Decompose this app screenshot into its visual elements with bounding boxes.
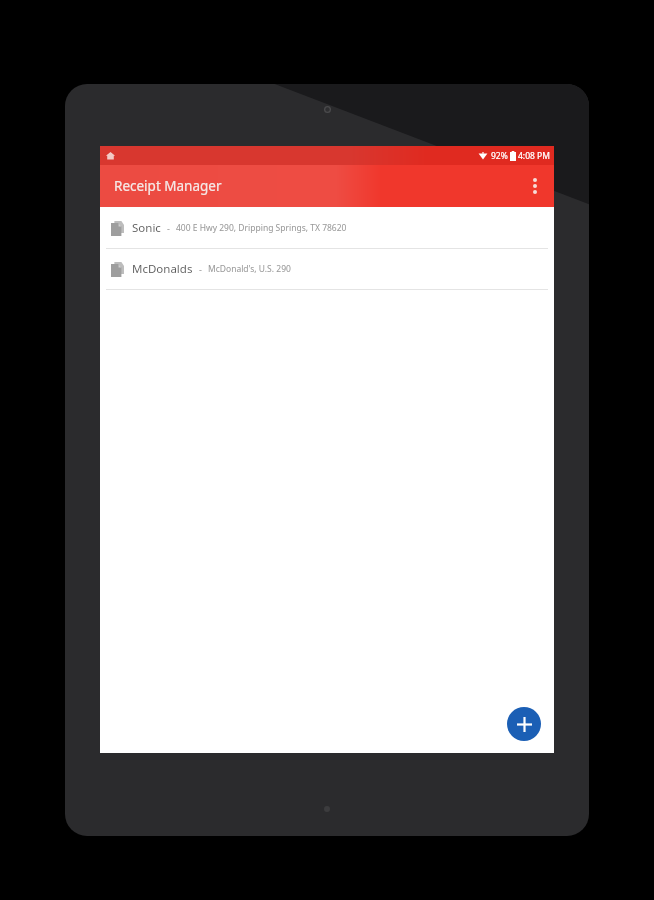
staticText: Receipt Manager — [114, 177, 222, 195]
button[interactable]: Sonic — [100, 208, 554, 248]
staticText: McDonald's, U.S. 290 — [208, 263, 291, 275]
staticText: McDonalds — [132, 261, 193, 277]
staticText: 400 E Hwy 290, Dripping Springs, TX 7862… — [176, 222, 347, 234]
button[interactable]: Add receipt — [507, 707, 541, 741]
button[interactable]: McDonalds — [100, 249, 554, 289]
button[interactable]: More options — [516, 167, 554, 205]
staticText: - — [199, 263, 202, 275]
staticText: - — [167, 222, 170, 234]
staticText: 4:08 PM — [518, 150, 550, 162]
staticText: 92% — [491, 150, 508, 162]
staticText: Sonic — [132, 220, 161, 236]
